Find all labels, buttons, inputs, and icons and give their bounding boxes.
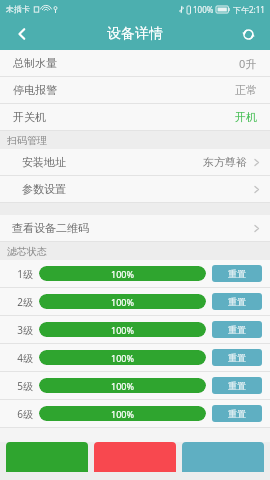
staticText: 重置: [228, 408, 246, 419]
staticText: 5级: [8, 379, 33, 393]
staticText: 安装地址: [22, 155, 66, 169]
staticText: 停电报警: [13, 83, 57, 97]
staticText: 下午2:11: [233, 4, 265, 15]
staticText: 东方尊裕: [203, 155, 247, 169]
staticText: 100%: [111, 296, 134, 308]
staticText: 重置: [228, 352, 246, 363]
staticText: 开机: [235, 110, 257, 124]
staticText: 4级: [8, 351, 33, 365]
button[interactable]: 重置: [212, 265, 262, 282]
button[interactable]: 重置: [212, 349, 262, 366]
button[interactable]: 重置: [212, 293, 262, 310]
staticText: 0升: [239, 56, 257, 71]
staticText: 100%: [111, 324, 134, 336]
button[interactable]: 重置: [212, 321, 262, 338]
button[interactable]: Back: [0, 18, 44, 50]
staticText: 总制水量: [13, 56, 57, 70]
button[interactable]: 停电报警: [0, 77, 270, 104]
staticText: 查看设备二维码: [12, 221, 89, 235]
staticText: 重置: [228, 324, 246, 335]
staticText: 重置: [228, 268, 246, 279]
staticText: 100%: [111, 268, 134, 280]
staticText: 100%: [111, 380, 134, 392]
button[interactable]: 重置: [212, 377, 262, 394]
button[interactable]: 重置: [212, 405, 262, 422]
button[interactable]: [94, 442, 176, 472]
button[interactable]: [6, 442, 88, 472]
staticText: 重置: [228, 296, 246, 307]
staticText: 3级: [8, 323, 33, 337]
button[interactable]: 开关机: [0, 104, 270, 131]
button[interactable]: 总制水量: [0, 50, 270, 77]
button[interactable]: 参数设置: [0, 176, 270, 203]
staticText: 未插卡: [6, 4, 30, 14]
staticText: 设备详情: [107, 25, 163, 43]
staticText: 2级: [8, 295, 33, 309]
staticText: 100%: [111, 408, 134, 420]
button[interactable]: [182, 442, 264, 472]
staticText: 6级: [8, 407, 33, 421]
staticText: 扫码管理: [7, 134, 47, 147]
button[interactable]: Refresh: [226, 18, 270, 50]
button[interactable]: 安装地址: [0, 149, 270, 176]
staticText: 1级: [8, 267, 33, 281]
button[interactable]: 查看设备二维码: [0, 215, 270, 242]
staticText: 100%: [193, 4, 214, 15]
staticText: 滤芯状态: [7, 245, 47, 258]
staticText: 开关机: [13, 110, 46, 124]
staticText: 100%: [111, 352, 134, 364]
staticText: 正常: [235, 83, 257, 97]
staticText: 参数设置: [22, 182, 66, 196]
staticText: 重置: [228, 380, 246, 391]
